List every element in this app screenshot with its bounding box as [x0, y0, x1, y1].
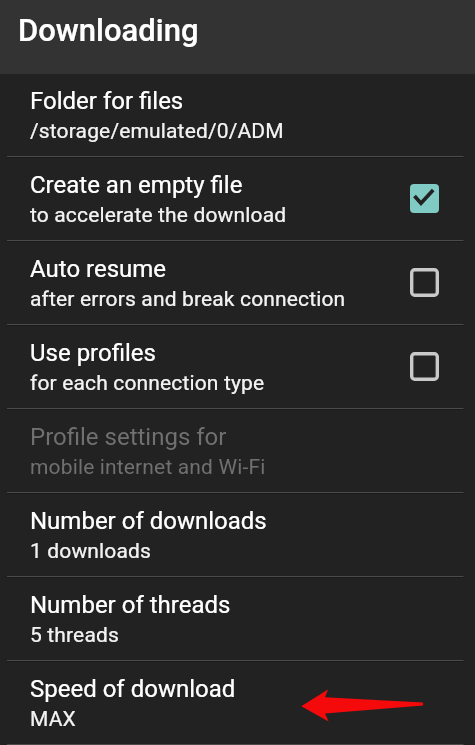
button[interactable]: Number of threads: [0, 578, 475, 660]
staticText: Number of downloads: [30, 507, 267, 535]
button[interactable]: Auto resume: [0, 242, 475, 324]
button[interactable]: Number of downloads: [0, 494, 475, 576]
staticText: Create an empty file: [30, 171, 243, 199]
staticText: mobile internet and Wi-Fi: [30, 455, 266, 480]
staticText: for each connection type: [30, 371, 265, 396]
button[interactable]: Unchecked: [410, 352, 439, 381]
button[interactable]: Speed of download: [0, 662, 475, 744]
staticText: Use profiles: [30, 339, 156, 367]
button[interactable]: Create an empty file: [0, 158, 475, 240]
staticText: to accelerate the download: [30, 203, 287, 228]
staticText: Downloading: [18, 12, 199, 48]
button[interactable]: Unchecked: [410, 268, 439, 297]
staticText: Number of threads: [30, 591, 231, 619]
button[interactable]: Profile settings for: [0, 410, 475, 492]
staticText: Folder for files: [30, 87, 184, 115]
button[interactable]: Checked: [410, 184, 439, 213]
staticText: after errors and break connection: [30, 287, 346, 312]
staticText: Speed of download: [30, 675, 236, 703]
staticText: MAX: [30, 707, 76, 732]
button[interactable]: Use profiles: [0, 326, 475, 408]
staticText: Auto resume: [30, 255, 167, 283]
button[interactable]: Folder for files: [0, 74, 475, 156]
staticText: Profile settings for: [30, 423, 227, 451]
staticText: 1 downloads: [30, 539, 152, 564]
staticText: /storage/emulated/0/ADM: [30, 119, 284, 144]
staticText: 5 threads: [30, 623, 119, 648]
